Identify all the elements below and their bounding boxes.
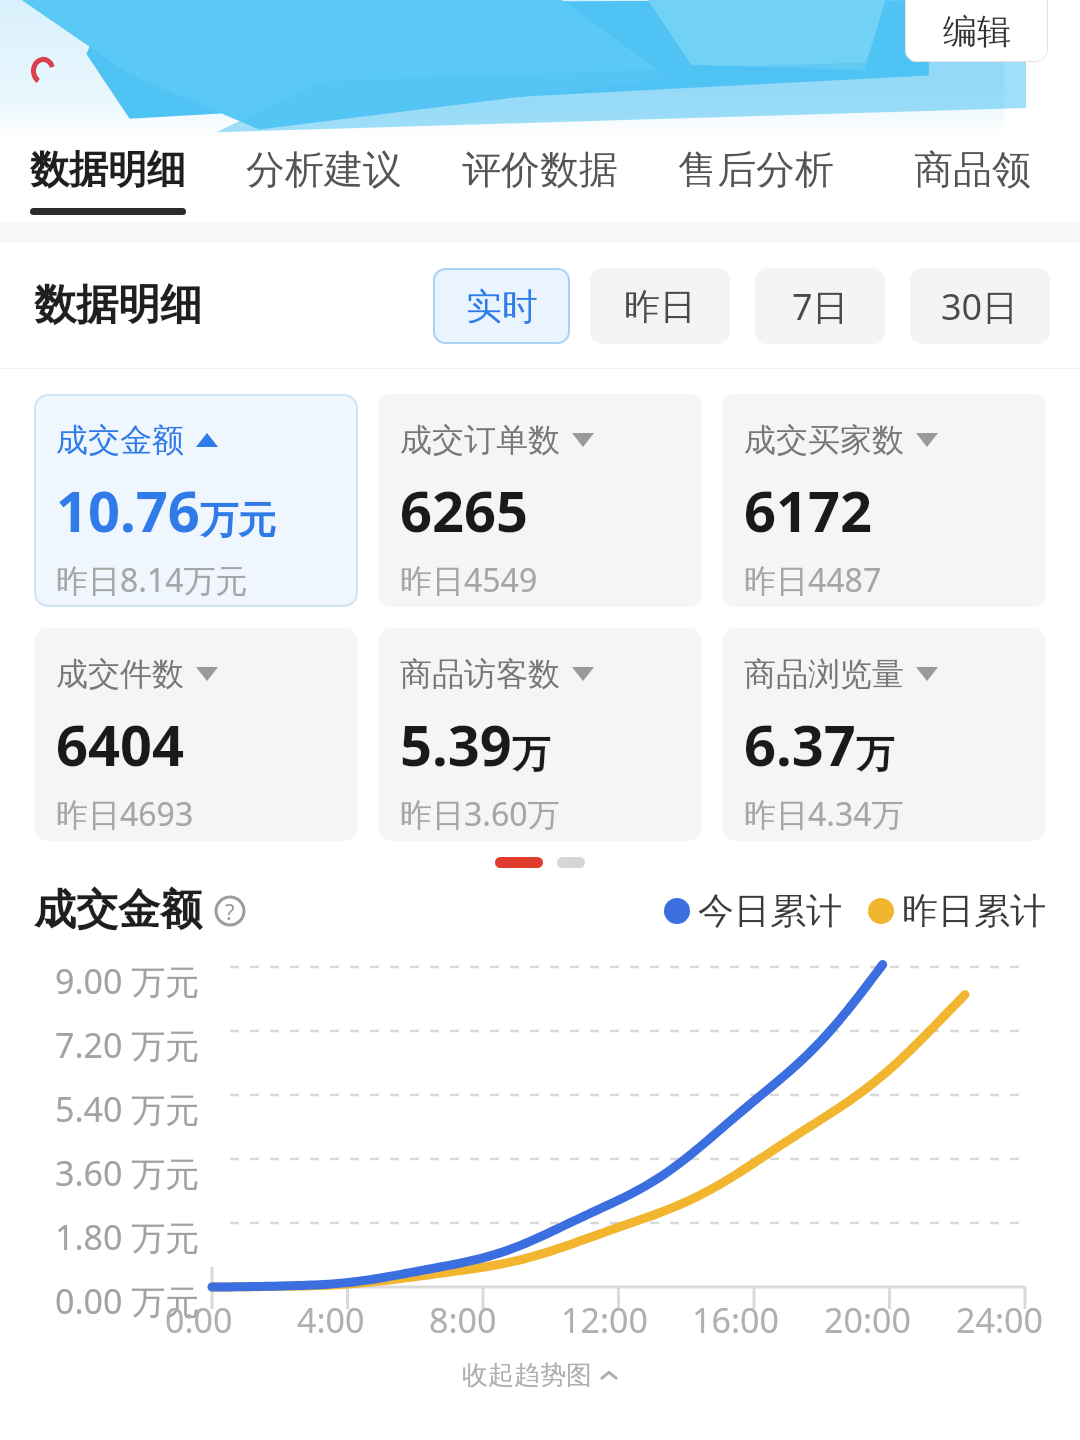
staticText: 16:00	[692, 1297, 802, 1343]
staticText: 今日累计	[698, 888, 842, 933]
staticText: 昨日4549	[400, 558, 538, 602]
staticText: 实时	[466, 284, 538, 329]
button[interactable]: 数据明细	[0, 135, 216, 222]
staticText: 6172	[744, 472, 873, 548]
staticText: 售后分析	[678, 145, 834, 194]
staticText: 昨日	[624, 284, 696, 329]
staticText: 昨日3.60万	[400, 792, 560, 836]
staticText: 20:00	[824, 1297, 934, 1343]
staticText: 商品访客数	[400, 654, 560, 694]
staticText: 数据明细	[30, 145, 186, 194]
staticText: 6404	[56, 706, 185, 782]
staticText: 3.60 万元	[55, 1150, 200, 1196]
staticText: 昨日4.34万	[744, 792, 904, 836]
button[interactable]: 昨日	[590, 268, 730, 344]
button[interactable]: 30日	[910, 268, 1050, 344]
staticText: 成交金额	[34, 884, 202, 937]
button[interactable]: 成交买家数	[722, 394, 1046, 607]
staticText: 6265	[400, 472, 529, 548]
button[interactable]: 成交金额	[34, 394, 358, 607]
staticText: 5.40 万元	[55, 1086, 200, 1132]
staticText: 昨日4487	[744, 558, 882, 602]
staticText: 成交件数	[56, 654, 184, 694]
staticText: 0:00	[165, 1297, 275, 1343]
staticText: 24:00	[956, 1297, 1066, 1343]
button[interactable]: 售后分析	[648, 135, 864, 222]
staticText: 商品领	[914, 145, 1031, 194]
button[interactable]: 成交件数	[34, 628, 358, 841]
button[interactable]: 商品领	[864, 135, 1080, 222]
button[interactable]: 编辑	[905, 0, 1048, 62]
staticText: 4:00	[297, 1297, 407, 1343]
staticText: 昨日4693	[56, 792, 194, 836]
staticText: 昨日8.14万元	[56, 558, 248, 602]
staticText: 收起趋势图	[462, 1359, 592, 1392]
staticText: 万	[856, 730, 894, 778]
button[interactable]: 商品浏览量	[722, 628, 1046, 841]
staticText: 6.37	[744, 706, 856, 782]
staticText: 成交订单数	[400, 420, 560, 460]
staticText: 0.00 万元	[55, 1278, 200, 1324]
staticText: 30日	[941, 282, 1019, 331]
staticText: 成交金额	[56, 420, 184, 460]
staticText: 万元	[200, 496, 276, 544]
staticText: 7.20 万元	[55, 1022, 200, 1068]
button[interactable]: 评价数据	[432, 135, 648, 222]
staticText: 10.76	[56, 472, 200, 548]
staticText: 万	[512, 730, 550, 778]
staticText: 7日	[792, 282, 849, 331]
staticText: 商品浏览量	[744, 654, 904, 694]
button[interactable]: 商品访客数	[378, 628, 702, 841]
staticText: 分析建议	[246, 145, 402, 194]
staticText: 评价数据	[462, 145, 618, 194]
staticText: 5.39	[400, 706, 512, 782]
staticText: 12:00	[561, 1297, 671, 1343]
staticText: 数据明细	[34, 279, 202, 332]
button[interactable]: 7日	[755, 268, 885, 344]
button[interactable]: 帮助	[214, 895, 246, 927]
button[interactable]: 收起趋势图	[450, 1355, 630, 1396]
staticText: 编辑	[943, 10, 1011, 53]
staticText: 昨日累计	[902, 888, 1046, 933]
staticText: 8:00	[429, 1297, 539, 1343]
button[interactable]: 实时	[433, 268, 570, 344]
staticText: 1.80 万元	[55, 1214, 200, 1260]
staticText: 9.00 万元	[55, 958, 200, 1004]
button[interactable]: 成交订单数	[378, 394, 702, 607]
staticText: 成交买家数	[744, 420, 904, 460]
button[interactable]: 分析建议	[216, 135, 432, 222]
staticText: ?	[225, 896, 235, 926]
